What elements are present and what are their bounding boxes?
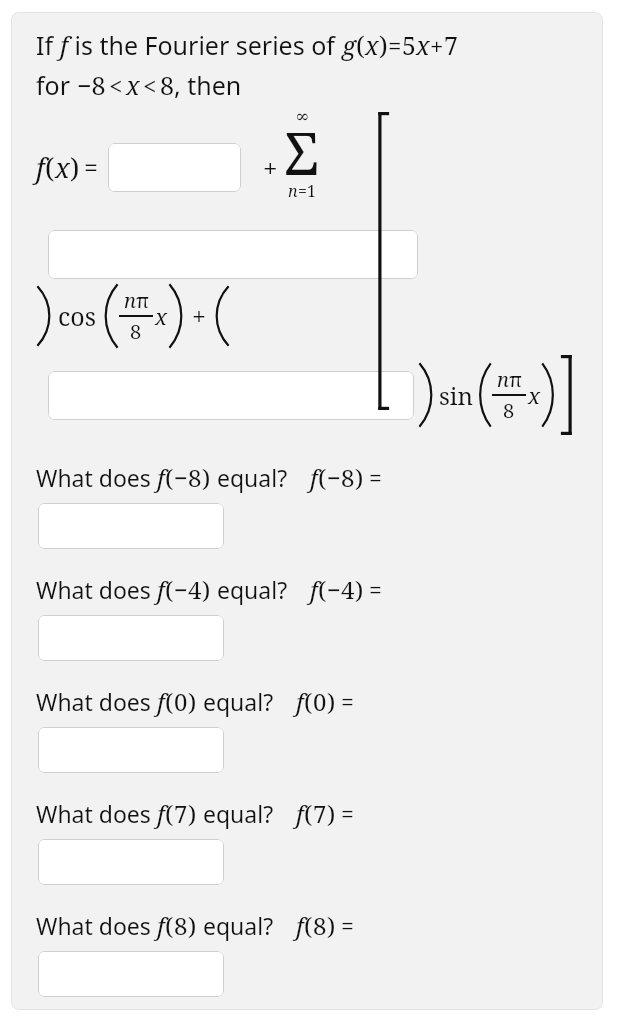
staticText: + <box>263 150 278 185</box>
staticText: ) <box>327 685 336 718</box>
staticText: n <box>497 366 509 393</box>
staticText: ) <box>188 797 197 830</box>
button[interactable] <box>48 371 414 420</box>
staticText: < <box>109 69 123 102</box>
staticText: 7 <box>444 28 458 62</box>
staticText: x <box>365 28 379 62</box>
staticText: x <box>416 28 430 62</box>
staticText: equal? <box>211 462 288 493</box>
staticText: equal? <box>197 910 274 941</box>
staticText: ( <box>318 461 327 494</box>
staticText: = <box>388 29 402 62</box>
staticText: Σ <box>284 113 320 192</box>
staticText: −8 <box>174 461 202 494</box>
staticText: ( <box>45 149 55 186</box>
staticText: f <box>157 573 165 606</box>
staticText: 8 <box>174 909 188 942</box>
staticText: π <box>509 366 522 393</box>
staticText: 7 <box>174 797 188 830</box>
staticText: =1 <box>298 180 316 202</box>
staticText: 5 <box>402 28 416 62</box>
staticText: ( <box>165 573 174 606</box>
staticText: f <box>157 461 165 494</box>
staticText: f <box>296 685 304 718</box>
staticText: < <box>143 69 157 102</box>
staticText: f <box>157 685 165 718</box>
button[interactable] <box>108 143 241 192</box>
staticText: for <box>36 68 77 102</box>
staticText: f <box>60 28 68 62</box>
staticText: n <box>288 180 298 202</box>
staticText: −8 <box>327 461 355 494</box>
staticText: ( <box>165 909 174 942</box>
staticText: ) <box>188 909 197 942</box>
staticText: ) <box>327 909 336 942</box>
staticText: 8 <box>503 397 515 424</box>
staticText: f <box>36 149 45 186</box>
staticText: , then <box>174 68 242 102</box>
button[interactable] <box>38 503 224 549</box>
button[interactable] <box>48 230 418 279</box>
staticText: n <box>124 287 136 314</box>
staticText: equal? <box>197 686 274 717</box>
staticText: ( <box>304 797 313 830</box>
staticText: g <box>342 28 356 62</box>
staticText: 8 <box>130 318 142 345</box>
staticText: −4 <box>327 573 355 606</box>
staticText: = <box>84 150 98 184</box>
staticText: = <box>341 798 354 829</box>
staticText: What does <box>36 574 157 605</box>
staticText: f <box>310 461 318 494</box>
button[interactable] <box>38 951 224 997</box>
staticText: f <box>296 797 304 830</box>
staticText: ) <box>202 461 211 494</box>
staticText: ∞ <box>295 106 310 126</box>
staticText: + <box>430 29 444 62</box>
button[interactable] <box>38 727 224 773</box>
staticText: f <box>296 909 304 942</box>
staticText: x <box>528 380 541 410</box>
staticText: What does <box>36 462 157 493</box>
staticText: ( <box>304 909 313 942</box>
staticText: ( <box>165 797 174 830</box>
staticText: ( <box>318 573 327 606</box>
staticText: What does <box>36 910 157 941</box>
staticText: ) <box>202 573 211 606</box>
staticText: 8 <box>160 68 174 102</box>
staticText: −8 <box>77 68 106 102</box>
staticText: −4 <box>174 573 202 606</box>
staticText: = <box>341 910 354 941</box>
staticText: f <box>310 573 318 606</box>
staticText: + <box>192 299 206 333</box>
staticText: cos <box>58 299 97 333</box>
staticText: x <box>55 149 70 186</box>
staticText: π <box>136 287 149 314</box>
staticText: 8 <box>313 909 327 942</box>
staticText: = <box>341 686 354 717</box>
staticText: x <box>155 301 168 331</box>
staticText: ) <box>70 149 80 186</box>
staticText: What does <box>36 798 157 829</box>
staticText: 0 <box>313 685 327 718</box>
staticText: What does <box>36 686 157 717</box>
staticText: ( <box>356 28 365 62</box>
staticText: ) <box>327 797 336 830</box>
staticText: 7 <box>313 797 327 830</box>
staticText: f <box>157 909 165 942</box>
staticText: ) <box>188 685 197 718</box>
staticText: is the Fourier series of <box>68 28 342 62</box>
button[interactable] <box>38 839 224 885</box>
staticText: = <box>369 462 382 493</box>
staticText: ( <box>304 685 313 718</box>
staticText: equal? <box>197 798 274 829</box>
staticText: ) <box>355 461 364 494</box>
staticText: equal? <box>211 574 288 605</box>
button[interactable] <box>38 615 224 661</box>
staticText: ( <box>165 685 174 718</box>
staticText: ( <box>165 461 174 494</box>
staticText: = <box>369 574 382 605</box>
staticText: ) <box>355 573 364 606</box>
staticText: x <box>126 68 140 102</box>
staticText: f <box>157 797 165 830</box>
staticText: sin <box>439 379 473 412</box>
